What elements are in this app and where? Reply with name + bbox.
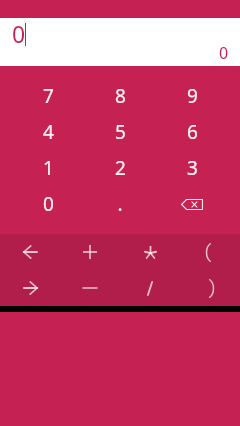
- staticText: 0: [43, 191, 54, 217]
- staticText: 6: [187, 119, 198, 145]
- button[interactable]: 5: [84, 114, 156, 150]
- button[interactable]: 9: [156, 78, 228, 114]
- staticText: 0: [219, 42, 229, 64]
- staticText: .: [117, 191, 123, 217]
- button[interactable]: 3: [156, 150, 228, 186]
- button[interactable]: Minus: [60, 270, 120, 306]
- staticText: 2: [115, 155, 126, 181]
- button[interactable]: Backspace: [156, 186, 228, 222]
- button[interactable]: 8: [84, 78, 156, 114]
- button[interactable]: 4: [12, 114, 84, 150]
- button[interactable]: Divide: [120, 270, 180, 306]
- staticText: 5: [115, 119, 126, 145]
- button[interactable]: Close parenthesis: [180, 270, 240, 306]
- staticText: 7: [43, 83, 54, 109]
- button[interactable]: 6: [156, 114, 228, 150]
- button[interactable]: 1: [12, 150, 84, 186]
- button[interactable]: .: [84, 186, 156, 222]
- button[interactable]: Move cursor left: [0, 234, 60, 270]
- staticText: 1: [43, 155, 54, 181]
- staticText: 9: [187, 83, 198, 109]
- staticText: 4: [43, 119, 54, 145]
- staticText: 8: [115, 83, 126, 109]
- button[interactable]: Plus: [60, 234, 120, 270]
- staticText: 3: [187, 155, 198, 181]
- button[interactable]: 2: [84, 150, 156, 186]
- button[interactable]: Move cursor right: [0, 270, 60, 306]
- button[interactable]: 0: [12, 186, 84, 222]
- button[interactable]: 7: [12, 78, 84, 114]
- button[interactable]: Multiply: [120, 234, 180, 270]
- button[interactable]: Open parenthesis: [180, 234, 240, 270]
- staticText: 0: [12, 18, 26, 48]
